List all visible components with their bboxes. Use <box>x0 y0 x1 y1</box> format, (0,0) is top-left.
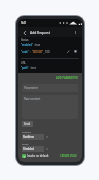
staticText: "200 OK" <box>32 50 43 54</box>
staticText: 9:41 <box>21 21 27 25</box>
button[interactable]: Disabled <box>22 146 48 152</box>
staticText: Send <box>24 122 31 126</box>
staticText: : <box>29 50 32 54</box>
staticText: Disabled <box>23 147 34 151</box>
button[interactable]: Raw content <box>22 95 78 119</box>
staticText: CREATE RULE <box>60 154 77 158</box>
staticText: ADD PARAMETER <box>56 76 78 80</box>
button[interactable]: More options <box>72 29 79 36</box>
staticText: Add Request <box>30 30 50 34</box>
button[interactable]: Back <box>21 29 28 36</box>
button[interactable]: Invoke on default <box>22 154 50 158</box>
button[interactable]: CREATE RULE <box>59 153 78 159</box>
staticText: Invoke on default <box>27 154 49 158</box>
staticText: "enabled" <box>21 43 33 47</box>
staticText: Raw content <box>24 97 41 101</box>
staticText: , 100 <box>43 50 50 54</box>
staticText: Proxy <box>22 142 29 145</box>
staticText: Status <box>21 38 29 42</box>
button[interactable]: Edit <box>65 48 72 55</box>
button[interactable]: Parameter <box>22 84 78 92</box>
staticText: "path" <box>21 66 29 70</box>
button[interactable]: Send <box>22 121 33 127</box>
button[interactable]: Delete <box>72 48 79 55</box>
staticText: Realtime <box>23 135 35 139</box>
staticText: Latency <box>22 130 32 133</box>
staticText: : test <box>29 66 36 70</box>
staticText: Parameter <box>24 86 38 90</box>
staticText: "code" <box>21 50 29 54</box>
staticText: : true <box>33 43 41 47</box>
button[interactable]: Realtime <box>22 134 48 140</box>
button[interactable]: ADD PARAMETER <box>55 75 79 81</box>
staticText: URL <box>21 61 26 65</box>
